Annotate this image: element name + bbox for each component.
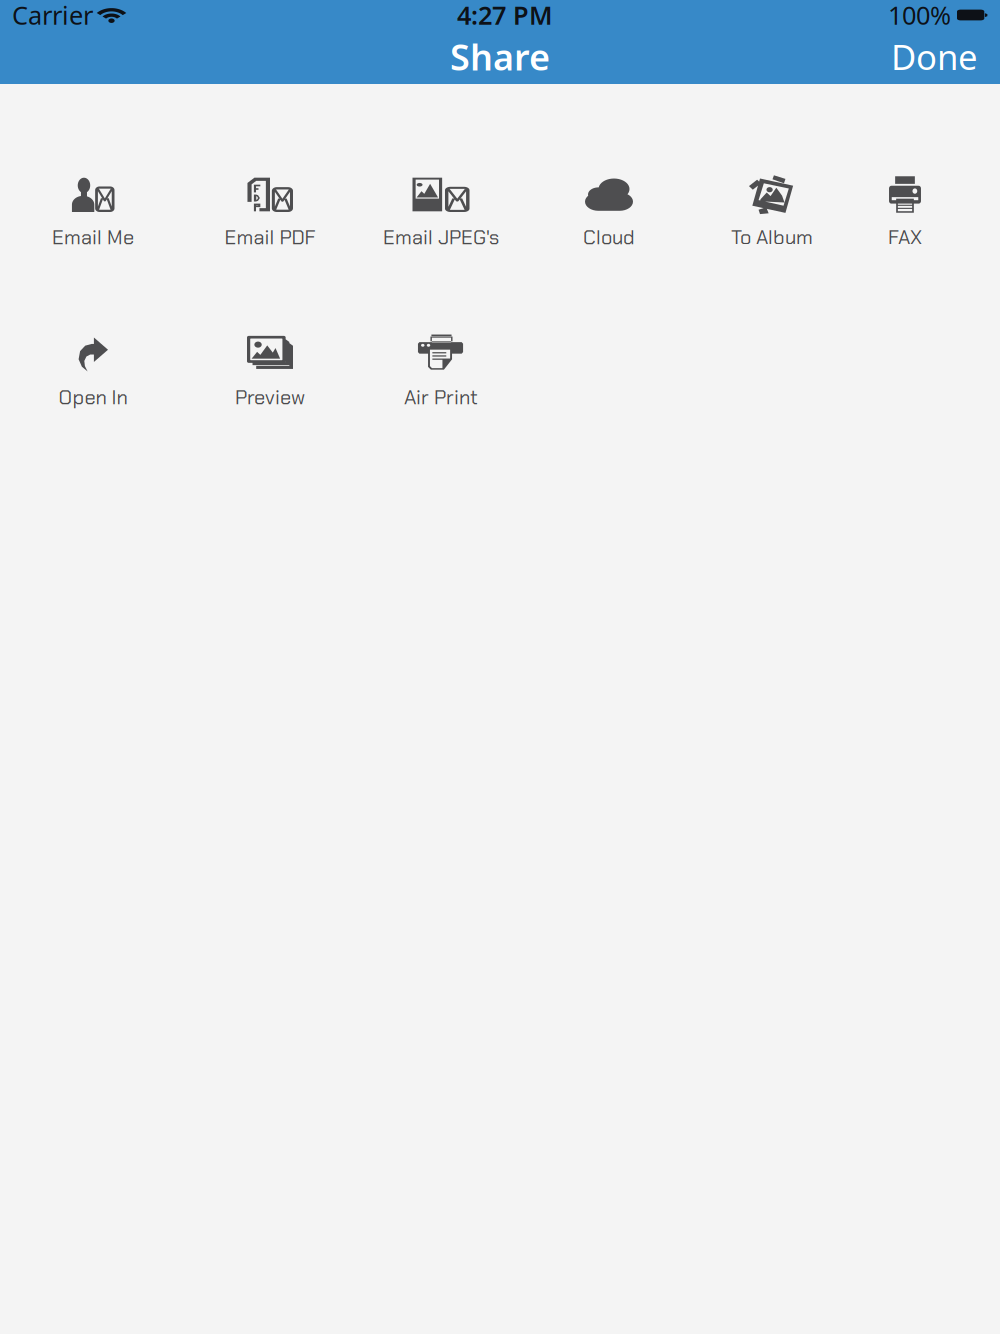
button[interactable]: Air Print (356, 304, 526, 404)
staticText: Share (450, 33, 550, 80)
button[interactable]: FAX (820, 144, 990, 244)
button[interactable]: Preview (185, 304, 355, 404)
button[interactable]: Email PDF (185, 144, 355, 244)
staticText: Done (891, 33, 978, 79)
staticText: Open In (58, 384, 127, 410)
staticText: To Album (731, 224, 813, 250)
button[interactable]: Cloud (524, 144, 694, 244)
button[interactable]: To Album (687, 144, 857, 244)
button[interactable]: Done (877, 25, 992, 87)
staticText: Air Print (404, 384, 478, 410)
staticText: Email JPEG's (383, 224, 499, 250)
staticText: Email Me (52, 224, 134, 250)
button[interactable]: Email Me (8, 144, 178, 244)
staticText: Cloud (583, 224, 635, 250)
staticText: 4:27 PM (457, 0, 553, 32)
staticText: 100% (888, 0, 951, 32)
staticText: Email PDF (224, 224, 315, 250)
staticText: Carrier (12, 0, 93, 32)
staticText: Preview (235, 384, 305, 410)
button[interactable]: Open In (8, 304, 178, 404)
staticText: FAX (888, 224, 922, 250)
button[interactable]: Email JPEG's (356, 144, 526, 244)
